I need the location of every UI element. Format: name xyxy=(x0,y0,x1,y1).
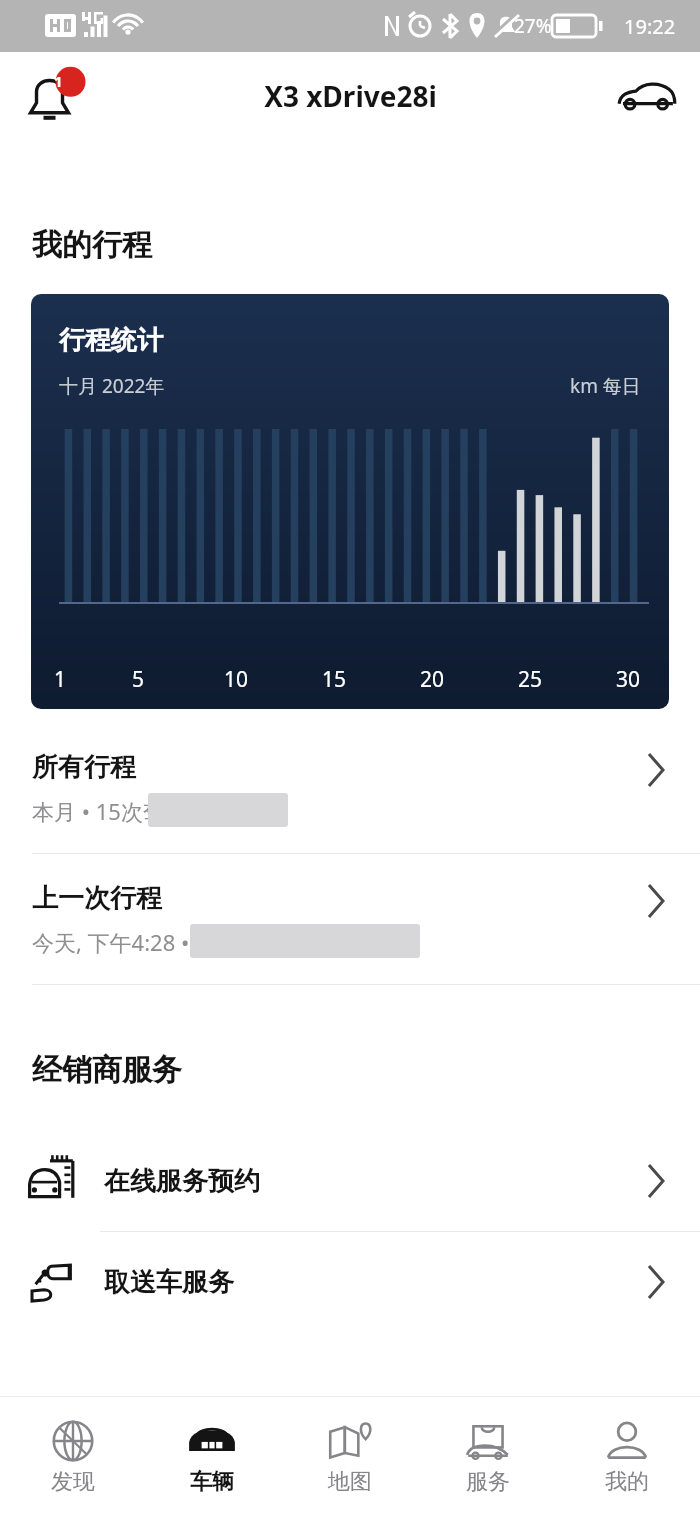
button[interactable]: 取送车服务 xyxy=(0,1232,700,1332)
staticText: km 每日 xyxy=(570,373,641,399)
staticText: 服务 xyxy=(466,1468,510,1496)
button[interactable]: 发现 xyxy=(8,1418,138,1496)
button[interactable]: 上一次行程 xyxy=(0,854,700,984)
button[interactable]: 我的 xyxy=(562,1418,692,1496)
staticText: 今天, 下午4:28 • xyxy=(32,927,190,957)
staticText: 行程统计 xyxy=(59,324,163,357)
button[interactable]: 服务 xyxy=(423,1418,553,1496)
staticText: 我的行程 xyxy=(32,226,152,264)
staticText: 本月 • 15次驾驶 xyxy=(32,796,187,826)
button[interactable]: 车辆 xyxy=(147,1418,277,1496)
button[interactable]: 在线服务预约 xyxy=(0,1131,700,1231)
staticText: 发现 xyxy=(51,1468,95,1496)
button[interactable]: Vehicle xyxy=(614,72,678,120)
staticText: 15 xyxy=(322,665,347,694)
button[interactable]: 行程统计 xyxy=(31,294,669,709)
staticText: 地图 xyxy=(328,1468,372,1496)
staticText: 所有行程 xyxy=(32,751,136,784)
staticText: 取送车服务 xyxy=(104,1266,234,1299)
button[interactable]: 地图 xyxy=(285,1418,415,1496)
staticText: 20 xyxy=(420,665,445,694)
staticText: 19:22 xyxy=(624,13,676,40)
staticText: 十月 2022年 xyxy=(59,373,165,399)
staticText: 经销商服务 xyxy=(32,1051,182,1089)
staticText: 1 xyxy=(54,665,67,694)
staticText: 车辆 xyxy=(190,1468,234,1496)
staticText: 1 xyxy=(54,71,63,91)
staticText: 27% xyxy=(514,13,552,39)
staticText: 25 xyxy=(518,665,543,694)
button[interactable]: 所有行程 xyxy=(0,723,700,853)
button[interactable]: Notifications xyxy=(26,68,82,124)
staticText: 我的 xyxy=(605,1468,649,1496)
staticText: 10 xyxy=(224,665,249,694)
staticText: 30 xyxy=(616,665,641,694)
staticText: X3 xDrive28i xyxy=(264,77,437,115)
staticText: 上一次行程 xyxy=(32,882,162,915)
staticText: 5 xyxy=(132,665,145,694)
staticText: 在线服务预约 xyxy=(104,1165,260,1198)
